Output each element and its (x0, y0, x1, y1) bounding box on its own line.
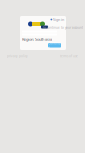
button[interactable]: Sign in (50, 17, 64, 21)
button[interactable]: privacy policy (7, 54, 28, 58)
staticText: Continue (48, 41, 61, 50)
button[interactable]: terms of use (60, 54, 78, 58)
staticText: Region: South asia (22, 36, 52, 42)
button[interactable]: Continue (48, 43, 61, 47)
staticText: terms of use (60, 54, 78, 58)
staticText: Sign in (53, 17, 64, 22)
staticText: to continue to your account (43, 25, 83, 29)
staticText: privacy policy (7, 54, 28, 58)
